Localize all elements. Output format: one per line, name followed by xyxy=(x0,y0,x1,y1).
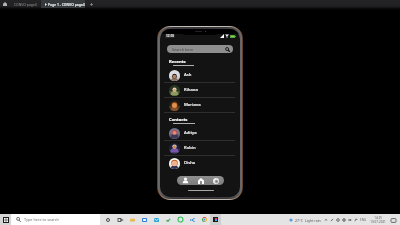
button[interactable]: Home xyxy=(194,176,207,185)
staticText: Search here xyxy=(172,47,194,52)
staticText: 14:29 19-07-2021 xyxy=(370,216,386,224)
staticText: Rihana xyxy=(184,87,198,93)
button[interactable]: Home xyxy=(0,0,10,8)
button[interactable]: Profile xyxy=(179,176,192,185)
button[interactable]: Spotify xyxy=(174,214,186,225)
button[interactable]: Figma xyxy=(210,214,221,225)
button[interactable]: Robin xyxy=(160,141,240,155)
staticText: ENG xyxy=(360,218,367,222)
button[interactable]: Photos xyxy=(162,214,174,225)
button[interactable]: New tab xyxy=(88,1,95,8)
button[interactable]: Type here to search xyxy=(11,214,100,225)
button[interactable]: Page 1 - CONVO page4 xyxy=(41,0,85,8)
button[interactable]: Chrome xyxy=(198,214,210,225)
button[interactable]: Mail xyxy=(150,214,162,225)
staticText: Contacts xyxy=(169,117,188,123)
button[interactable]: Start xyxy=(0,214,11,225)
button[interactable]: CONVO page4 xyxy=(14,2,37,7)
staticText: 27°C Light rain xyxy=(295,218,321,223)
staticText: Type here to search xyxy=(24,217,59,222)
staticText: Aditya xyxy=(184,130,197,136)
button[interactable]: Settings xyxy=(209,176,222,185)
button[interactable]: Cortana xyxy=(102,214,114,225)
staticText: 12:18 xyxy=(166,34,175,38)
staticText: Recents xyxy=(169,59,186,65)
button[interactable]: Ash xyxy=(160,68,240,82)
staticText: Page 1 - CONVO page4 xyxy=(48,2,85,7)
button[interactable]: VS Code xyxy=(186,214,198,225)
button[interactable]: Rihana xyxy=(160,83,240,97)
button[interactable]: File Explorer xyxy=(126,214,138,225)
button[interactable]: Search here xyxy=(167,45,233,53)
staticText: Ash xyxy=(184,72,192,78)
staticText: Mariana xyxy=(184,102,201,108)
button[interactable]: Mariana xyxy=(160,98,240,112)
button[interactable]: Microsoft Store xyxy=(138,214,150,225)
button[interactable]: Task view xyxy=(114,214,126,225)
button[interactable]: Aditya xyxy=(160,126,240,140)
button[interactable]: Disha xyxy=(160,156,240,170)
staticText: Robin xyxy=(184,145,196,151)
staticText: Disha xyxy=(184,160,196,166)
button[interactable]: Notifications xyxy=(390,217,397,224)
